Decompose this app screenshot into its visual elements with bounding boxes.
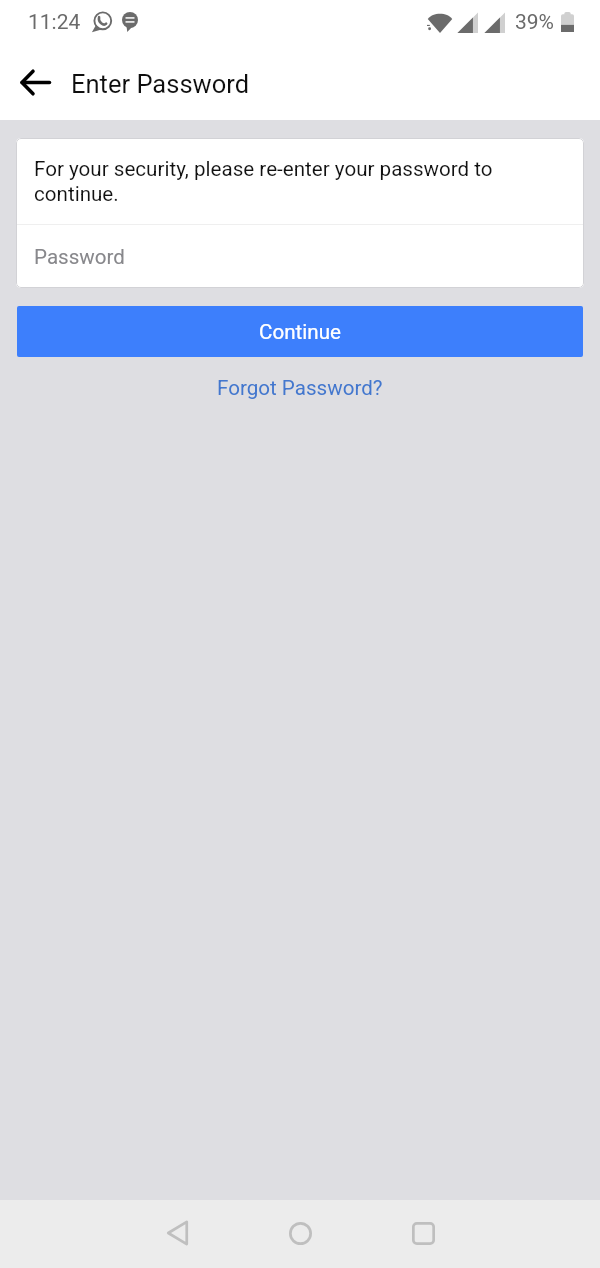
button[interactable]: Password field bbox=[16, 225, 584, 288]
staticText: For your security, please re-enter your … bbox=[34, 157, 548, 206]
staticText: 39% bbox=[515, 10, 554, 35]
staticText: Password bbox=[34, 245, 125, 269]
staticText: 11:24 bbox=[28, 10, 81, 35]
staticText: Enter Password bbox=[71, 69, 250, 99]
button[interactable]: Back bbox=[0, 47, 71, 117]
staticText: Continue bbox=[259, 320, 341, 344]
button[interactable]: Recent apps bbox=[400, 1210, 446, 1256]
staticText: Forgot Password? bbox=[217, 376, 383, 400]
button[interactable]: Home bbox=[277, 1210, 323, 1256]
button[interactable]: Back bbox=[154, 1210, 200, 1256]
button[interactable]: Continue bbox=[17, 306, 583, 357]
button[interactable]: Forgot Password? bbox=[203, 370, 397, 406]
